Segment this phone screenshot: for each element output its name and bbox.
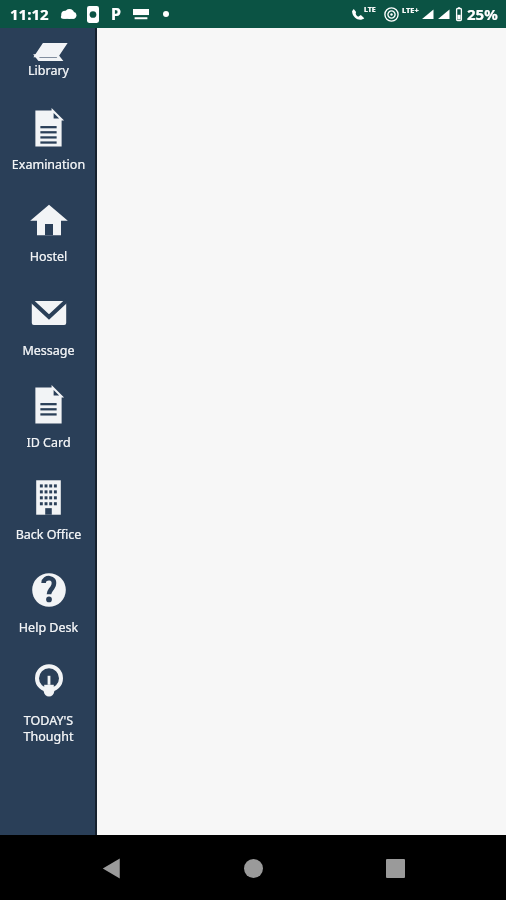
button[interactable]: Home	[222, 837, 284, 899]
staticText: Back Office	[2, 526, 95, 543]
button[interactable]: Examination	[0, 79, 97, 173]
staticText: LTE+	[402, 5, 419, 15]
staticText: 11:12	[10, 4, 49, 24]
button[interactable]: TODAY'S Thought	[0, 636, 97, 744]
button[interactable]: Library	[0, 28, 97, 79]
button[interactable]: Back Office	[0, 451, 97, 543]
staticText: Hostel	[2, 248, 95, 265]
button[interactable]: ID Card	[0, 359, 97, 451]
staticText: Help Desk	[2, 619, 95, 636]
button[interactable]: Recent apps	[364, 837, 426, 899]
staticText: P	[111, 3, 121, 25]
staticText: Examination	[2, 156, 95, 173]
staticText: ID Card	[2, 434, 95, 451]
staticText: LTE	[364, 5, 376, 15]
staticText: Message	[2, 342, 95, 359]
button[interactable]: Back	[80, 837, 142, 899]
button[interactable]: Message	[0, 265, 97, 359]
staticText: TODAY'S Thought	[2, 712, 95, 744]
staticText: Library	[0, 62, 97, 79]
staticText: 25%	[467, 4, 498, 24]
button[interactable]: Help Desk	[0, 543, 97, 636]
button[interactable]: Hostel	[0, 173, 97, 265]
